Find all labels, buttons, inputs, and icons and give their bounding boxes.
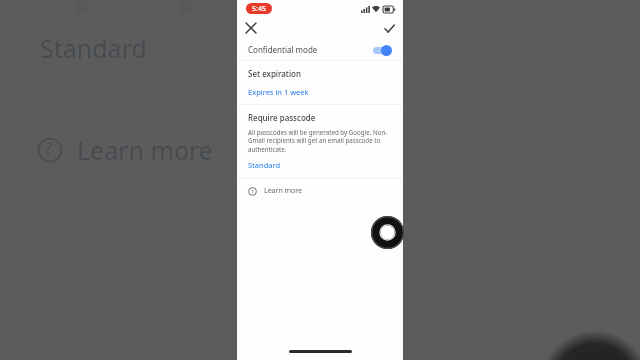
- button[interactable]: ?: [237, 179, 403, 203]
- button[interactable]: Expires in 1 week: [248, 87, 309, 97]
- staticText: Expires in 1 week: [248, 87, 309, 97]
- button[interactable]: Confidential mode: [237, 39, 403, 60]
- staticText: Standard: [248, 160, 281, 170]
- staticText: Learn more: [77, 133, 213, 167]
- button[interactable]: Standard: [248, 160, 281, 170]
- button[interactable]: Save: [379, 18, 399, 38]
- button[interactable]: Close: [241, 18, 261, 38]
- staticText: All passcodes will be generated by Googl…: [248, 128, 393, 153]
- staticText: Learn more: [264, 186, 303, 196]
- staticText: Standard: [40, 31, 147, 65]
- staticText: Set expiration: [248, 68, 301, 79]
- staticText: ?: [45, 137, 52, 159]
- staticText: ?: [251, 188, 254, 196]
- staticText: Confidential mode: [248, 44, 318, 55]
- staticText: Require passcode: [248, 112, 316, 123]
- staticText: 5:45: [252, 4, 266, 14]
